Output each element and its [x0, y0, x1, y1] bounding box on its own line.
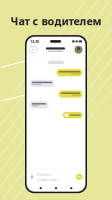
staticText: Чат с водителем [10, 14, 101, 28]
button[interactable]: Назад [29, 46, 36, 53]
button[interactable] [63, 112, 82, 118]
staticText: 12:30 [30, 39, 39, 44]
staticText: Введите сообщение… [37, 171, 60, 182]
button[interactable]: Профиль водителя [74, 46, 82, 54]
button[interactable]: Голосовое сообщение [29, 174, 34, 179]
button[interactable]: Отправить [76, 174, 82, 180]
